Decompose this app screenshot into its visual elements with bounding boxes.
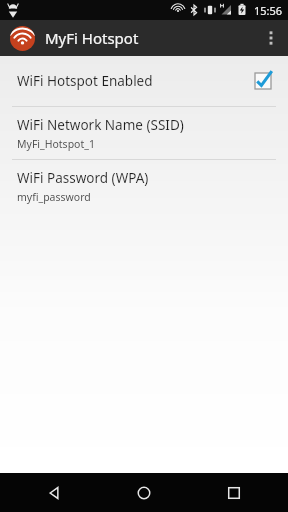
button[interactable]: WiFi Password (WPA) (0, 160, 288, 212)
button[interactable]: WiFi Network Name (SSID) (0, 107, 288, 159)
button[interactable]: Home (108, 473, 180, 512)
staticText: MyFi_Hotspot_1 (17, 137, 95, 151)
button[interactable]: Back (18, 473, 90, 512)
staticText: MyFi Hotspot (45, 28, 139, 48)
button[interactable]: Recent apps (198, 473, 270, 512)
button[interactable]: WiFi Hotspot Enabled (0, 56, 288, 106)
button[interactable]: MyFi Hotspot app icon (10, 26, 35, 51)
staticText: WiFi Network Name (SSID) (17, 116, 184, 134)
staticText: myfi_password (17, 190, 91, 204)
button[interactable]: More options (254, 20, 288, 56)
staticText: WiFi Password (WPA) (17, 169, 149, 187)
staticText: WiFi Hotspot Enabled (17, 72, 252, 90)
staticText: 15:56 (254, 3, 283, 18)
other: WiFi Hotspot Enabled checkbox (252, 70, 274, 92)
